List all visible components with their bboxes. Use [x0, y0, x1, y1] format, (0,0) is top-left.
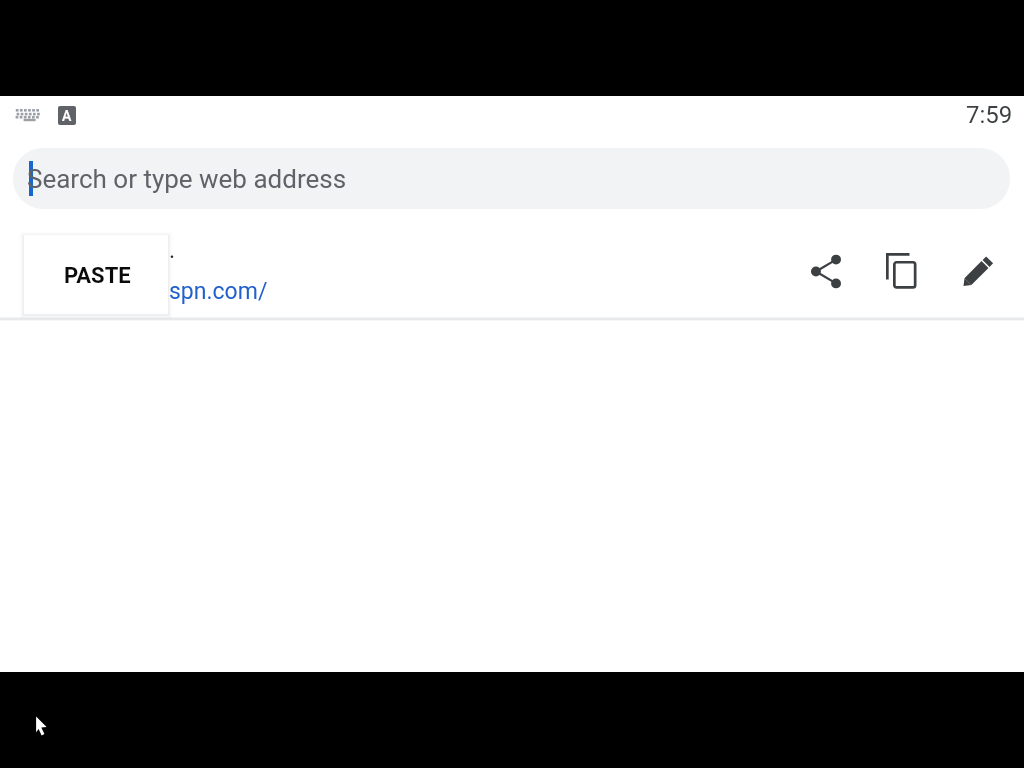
staticText: PASTE [64, 263, 131, 289]
button[interactable]: PASTE [24, 235, 168, 314]
button[interactable]: Input method [50, 97, 84, 133]
staticText: A [62, 108, 72, 124]
staticText: · [169, 244, 176, 271]
button[interactable]: Share [796, 241, 856, 301]
button[interactable]: Search or type web address [13, 148, 1010, 209]
button[interactable]: Keyboard [6, 99, 46, 131]
staticText: 7:59 [966, 101, 1013, 129]
button[interactable]: Copy [871, 241, 931, 301]
button[interactable]: · [0, 213, 1024, 318]
staticText: Search or type web address [27, 164, 347, 194]
staticText: spn.com/ [169, 278, 268, 305]
button[interactable]: Edit [949, 241, 1009, 301]
